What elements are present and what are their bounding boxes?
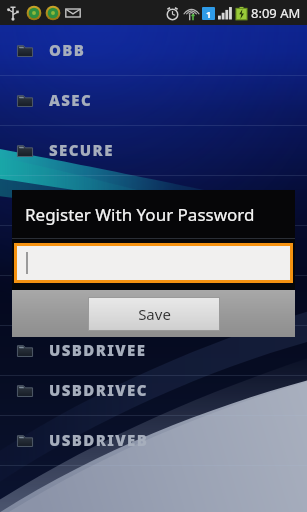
staticText: USBDRIVED — [49, 240, 150, 260]
button[interactable]: USBDRIVEB — [0, 415, 307, 465]
staticText: .LFS — [49, 190, 85, 210]
button[interactable]: USBDRIVED — [0, 225, 307, 275]
button[interactable]: Save — [89, 298, 219, 330]
button[interactable]: ASEC — [0, 75, 307, 125]
button[interactable]: USBDRIVEA — [0, 275, 307, 325]
button[interactable]: USBDRIVEE — [0, 325, 307, 375]
button[interactable] — [17, 246, 290, 280]
staticText: USBDRIVEE — [49, 340, 147, 360]
button[interactable]: OBB — [0, 25, 307, 75]
staticText: ASEC — [49, 90, 93, 110]
button[interactable]: USBDRIVEC — [0, 365, 307, 415]
staticText: OBB — [49, 40, 86, 60]
staticText: USBDRIVEB — [49, 430, 149, 450]
staticText: 8:09 AM — [251, 4, 301, 22]
button[interactable]: .LFS — [0, 175, 307, 225]
staticText: USBDRIVEC — [49, 380, 148, 400]
button[interactable]: SECURE — [0, 125, 307, 175]
staticText: Save — [138, 304, 171, 324]
staticText: Register With Your Password — [25, 203, 255, 226]
staticText: 1 — [206, 8, 212, 20]
staticText: USBDRIVEA — [49, 290, 150, 310]
staticText: SECURE — [49, 140, 114, 160]
